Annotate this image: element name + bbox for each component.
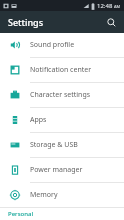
staticText: 12:48 [97,2,113,10]
button[interactable]: Notification center [0,58,124,82]
staticText: Personal [8,210,34,218]
button[interactable]: Sound profile [0,33,124,57]
button[interactable]: Storage & USB [0,133,124,157]
button[interactable]: Power manager [0,158,124,182]
staticText: Sound profile [30,40,75,50]
staticText: Power manager [30,165,83,175]
button[interactable]: Search [103,14,119,30]
staticText: Notification center [30,65,92,75]
button[interactable]: Memory [0,183,124,207]
staticText: Memory [30,190,58,200]
staticText: Apps [30,115,47,125]
staticText: Storage & USB [30,140,78,150]
button[interactable]: Character settings [0,83,124,107]
button[interactable]: Apps [0,108,124,132]
staticText: Settings [8,16,44,28]
staticText: AM [114,4,121,9]
staticText: Character settings [30,90,91,100]
